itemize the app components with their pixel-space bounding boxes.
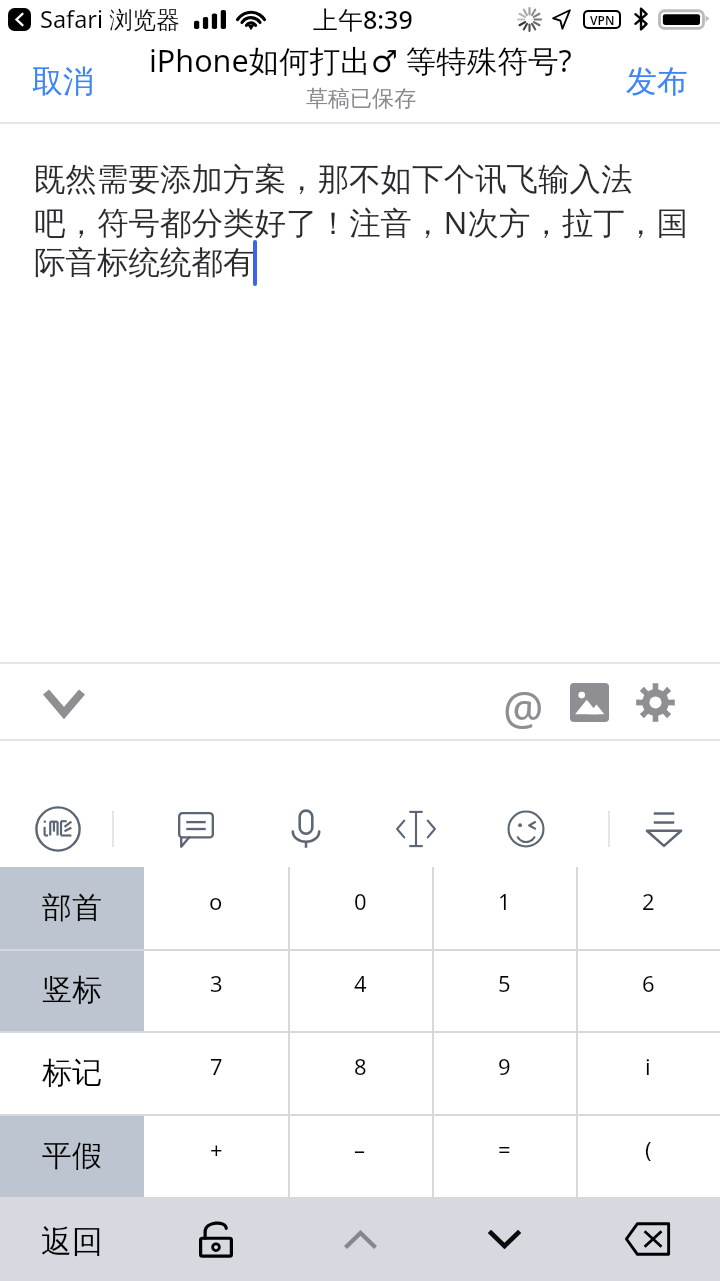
staticText: +	[210, 1134, 223, 1164]
staticText: 5	[498, 968, 511, 998]
button[interactable]: 4	[288, 949, 432, 1031]
button[interactable]: o	[144, 867, 288, 949]
staticText: iPhone如何打出♂ 等特殊符号?	[149, 39, 572, 81]
staticText: 1	[498, 886, 511, 916]
staticText: 标记	[42, 1054, 102, 1092]
button[interactable]: i	[576, 1031, 720, 1114]
staticText: 0	[354, 886, 367, 916]
button[interactable]: 竖标	[0, 949, 144, 1031]
staticText: 3	[210, 968, 223, 998]
button[interactable]: Unlock	[144, 1197, 288, 1281]
button[interactable]: =	[432, 1114, 576, 1197]
staticText: 际音标统统都有	[34, 243, 255, 283]
button[interactable]: Insert image	[563, 676, 615, 728]
staticText: 发布	[626, 62, 688, 101]
button[interactable]: 取消	[14, 50, 112, 113]
button[interactable]: 1	[432, 867, 576, 949]
staticText: 返回	[41, 1222, 103, 1261]
staticText: 既然需要添加方案，那不如下个讯飞输入法	[34, 160, 633, 200]
button[interactable]: 0	[288, 867, 432, 949]
button[interactable]: 9	[432, 1031, 576, 1114]
staticText: 取消	[32, 62, 94, 101]
button[interactable]: 发布	[608, 50, 706, 113]
button[interactable]: Previous page	[288, 1197, 432, 1281]
button[interactable]: 既然需要添加方案，那不如下个讯飞输入法	[0, 124, 720, 662]
staticText: 竖标	[42, 971, 102, 1009]
button[interactable]: (	[576, 1114, 720, 1197]
button[interactable]: 5	[432, 949, 576, 1031]
staticText: 9	[498, 1051, 511, 1081]
staticText: 2	[642, 886, 655, 916]
staticText: 平假	[42, 1137, 102, 1175]
button[interactable]: Mention	[497, 676, 549, 728]
button[interactable]: Settings	[629, 676, 681, 728]
button[interactable]: Voice input	[278, 801, 334, 857]
staticText: (	[645, 1134, 652, 1164]
button[interactable]: Delete	[576, 1197, 720, 1281]
button[interactable]: 7	[144, 1031, 288, 1114]
staticText: @	[503, 677, 544, 729]
staticText: 草稿已保存	[306, 85, 416, 113]
staticText: 4	[354, 968, 367, 998]
button[interactable]: 返回	[0, 1197, 144, 1281]
staticText: Safari 浏览器	[40, 3, 180, 35]
staticText: i	[645, 1051, 651, 1081]
staticText: 上午8:39	[313, 2, 413, 36]
staticText: 8	[354, 1051, 367, 1081]
button[interactable]: Collapse keyboard	[38, 676, 90, 728]
button[interactable]: Hide keyboard	[636, 801, 692, 857]
button[interactable]: iFlytek input	[30, 801, 86, 857]
button[interactable]: 2	[576, 867, 720, 949]
button[interactable]: 3	[144, 949, 288, 1031]
button[interactable]: Move cursor	[388, 801, 444, 857]
button[interactable]: Next page	[432, 1197, 576, 1281]
staticText: 6	[642, 968, 655, 998]
button[interactable]: 平假	[0, 1114, 144, 1197]
staticText: –	[354, 1134, 366, 1164]
staticText: 部首	[42, 889, 102, 927]
button[interactable]: Keyboard	[168, 801, 224, 857]
staticText: =	[498, 1134, 511, 1164]
button[interactable]: Emoji	[498, 801, 554, 857]
button[interactable]: +	[144, 1114, 288, 1197]
button[interactable]: 6	[576, 949, 720, 1031]
button[interactable]: –	[288, 1114, 432, 1197]
staticText: 7	[210, 1051, 223, 1081]
staticText: VPN	[590, 12, 615, 27]
staticText: 吧，符号都分类好了！注音，N次方，拉丁，国	[34, 200, 688, 243]
staticText: o	[209, 886, 223, 916]
button[interactable]: 标记	[0, 1031, 144, 1114]
button[interactable]: 8	[288, 1031, 432, 1114]
button[interactable]: 部首	[0, 867, 144, 949]
button[interactable]: Back to Safari	[8, 8, 31, 31]
